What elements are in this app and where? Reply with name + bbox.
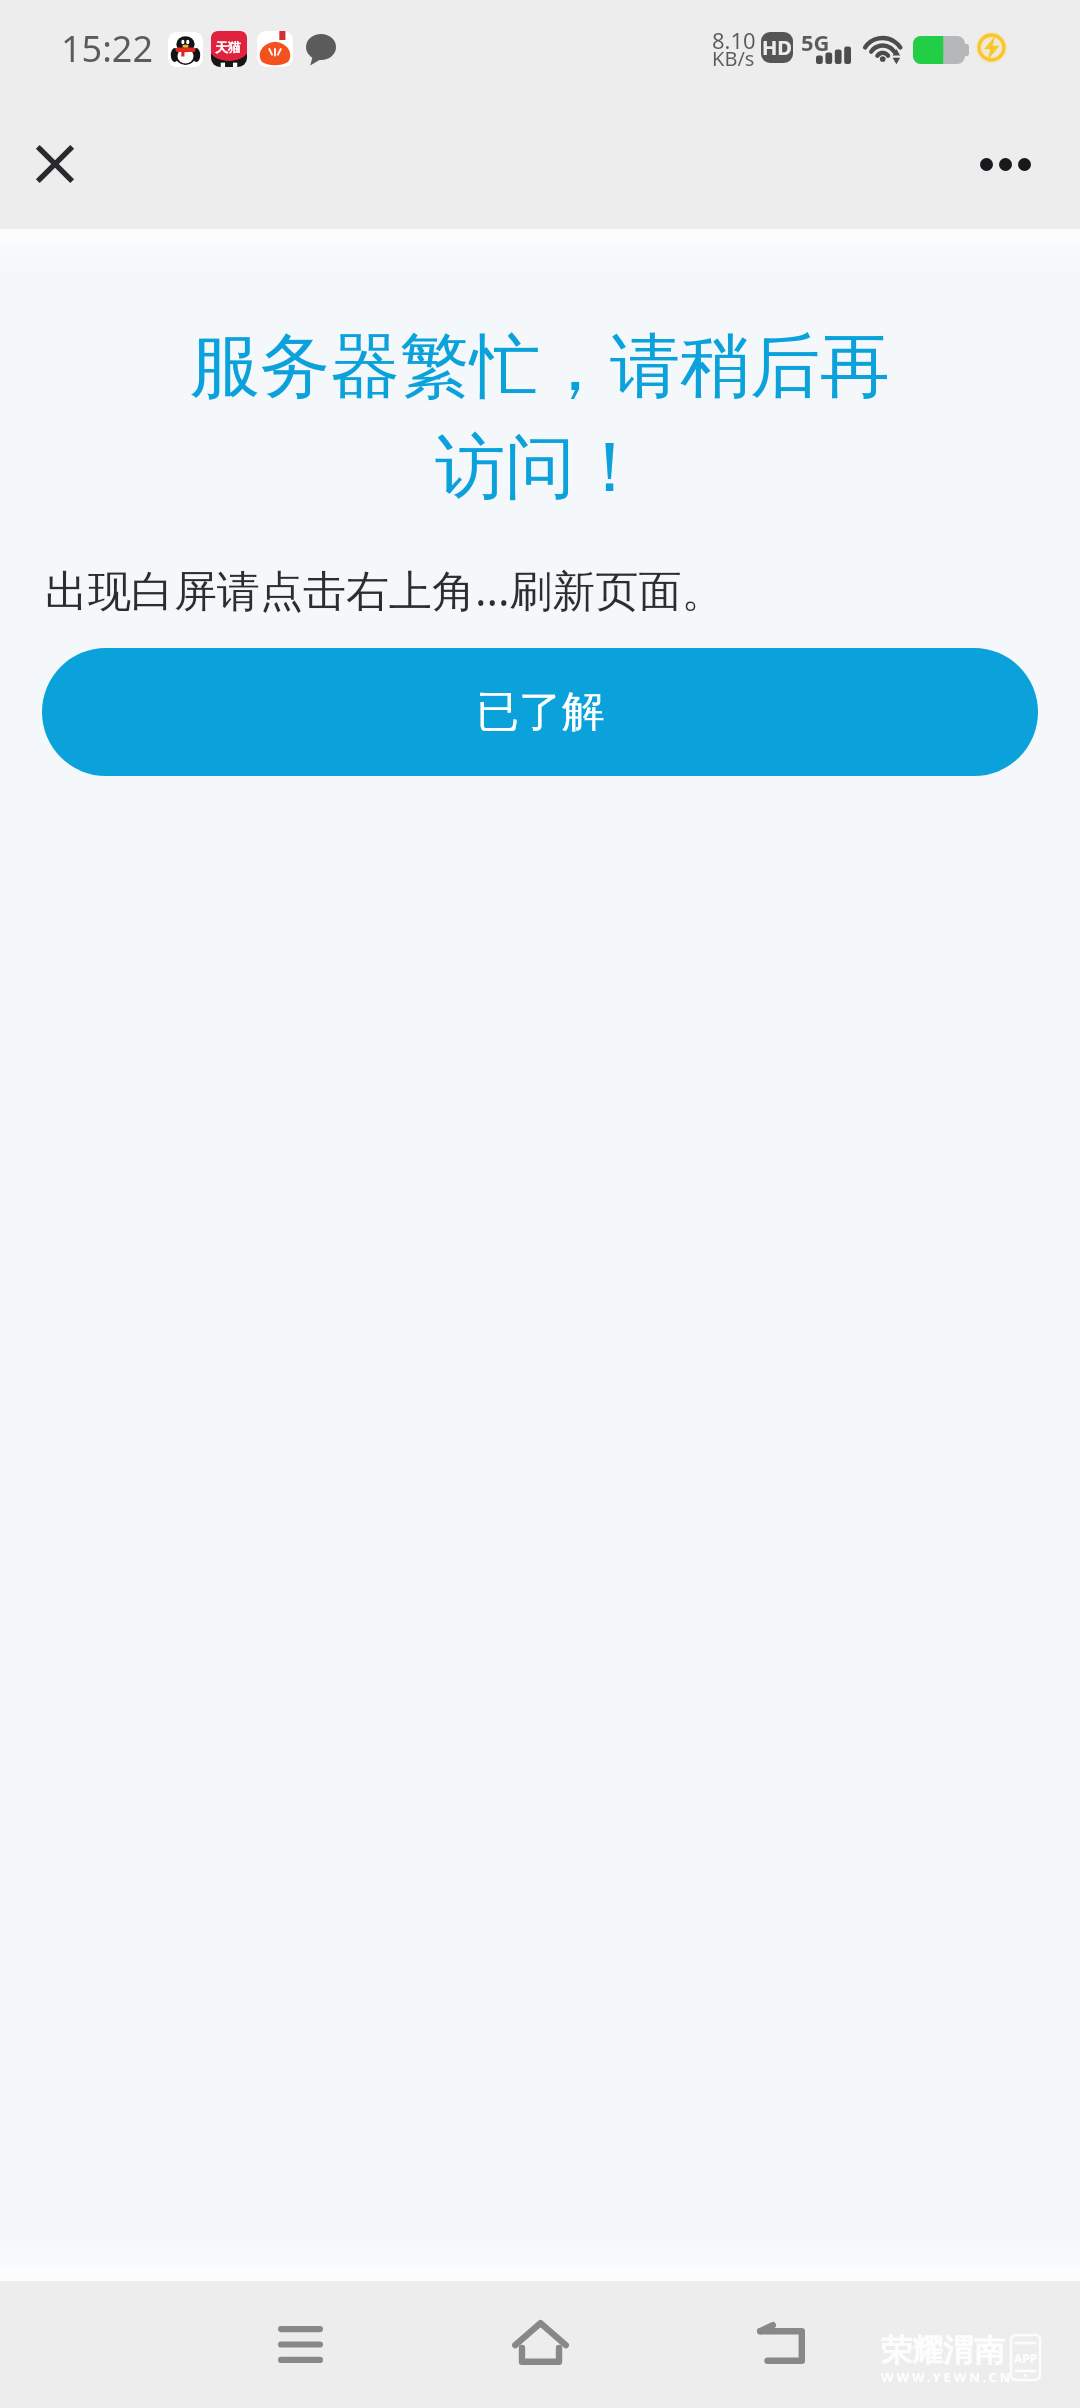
staticText: HD [762, 34, 792, 61]
staticText: 5G [801, 27, 830, 57]
staticText: KB/s [712, 45, 755, 72]
button[interactable]: Close [18, 127, 91, 200]
button[interactable]: Back [701, 2279, 861, 2406]
staticText: 出现白屏请点击右上角...刷新页面。 [45, 560, 725, 619]
button[interactable]: 已了解 [42, 648, 1038, 776]
button[interactable]: Home [460, 2279, 620, 2406]
staticText: 荣耀渭南 [881, 2331, 1005, 2370]
staticText: APP [1014, 2350, 1038, 2366]
button[interactable]: More options [950, 127, 1060, 201]
staticText: 15:22 [61, 24, 154, 73]
staticText: 服务器繁忙，请稍后再 访问！ [0, 323, 1080, 511]
staticText: 8.10 [712, 25, 756, 55]
staticText: 天猫 [215, 39, 241, 55]
staticText: WWW.YEWN.CN [881, 2368, 1014, 2386]
button[interactable]: Recents [220, 2281, 380, 2408]
staticText: 已了解 [476, 685, 605, 739]
